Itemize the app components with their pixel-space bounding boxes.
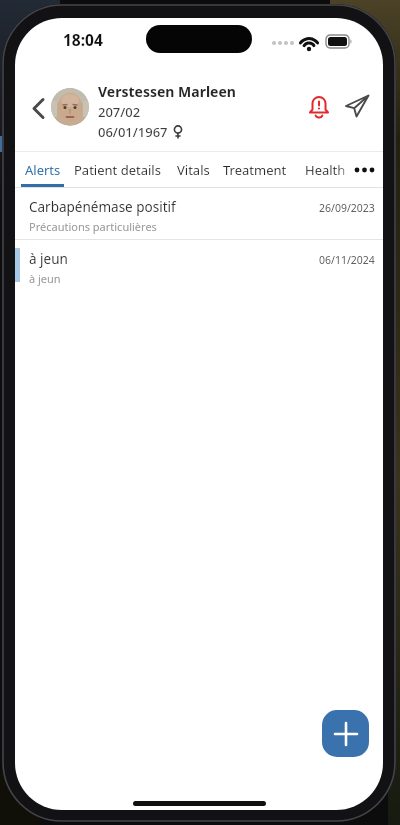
button[interactable]: Carbapénémase positif bbox=[15, 188, 383, 239]
staticText: Précautions particulières bbox=[29, 219, 157, 234]
button[interactable]: Patient details bbox=[70, 152, 164, 188]
staticText: Treatment bbox=[223, 161, 287, 179]
staticText: à jeun bbox=[29, 250, 68, 268]
button[interactable]: Health bbox=[300, 152, 350, 188]
button[interactable] bbox=[347, 152, 383, 187]
staticText: Alerts bbox=[25, 161, 61, 179]
staticText: 06/01/1967 bbox=[98, 123, 168, 141]
button[interactable]: Alerts bbox=[21, 152, 64, 188]
staticText: Health bbox=[305, 161, 346, 179]
staticText: à jeun bbox=[29, 271, 61, 286]
staticText: 18:04 bbox=[63, 29, 103, 50]
button[interactable]: Verstessen Marleen bbox=[98, 82, 236, 141]
staticText: 06/11/2024 bbox=[319, 253, 375, 267]
staticText: Vitals bbox=[177, 161, 210, 179]
staticText: Patient details bbox=[74, 161, 161, 179]
button[interactable]: à jeun bbox=[15, 240, 383, 291]
staticText: 26/09/2023 bbox=[319, 201, 375, 215]
staticText: Carbapénémase positif bbox=[29, 198, 176, 216]
button[interactable]: Treatment bbox=[221, 152, 289, 188]
button[interactable]: 18:04 bbox=[63, 29, 103, 50]
button[interactable] bbox=[322, 710, 369, 757]
button[interactable] bbox=[306, 94, 332, 120]
button[interactable] bbox=[343, 92, 371, 120]
button[interactable] bbox=[25, 95, 53, 123]
button[interactable]: Vitals bbox=[172, 152, 214, 188]
staticText: 207/02 bbox=[98, 103, 141, 121]
staticText: Verstessen Marleen bbox=[98, 82, 236, 101]
button[interactable] bbox=[51, 88, 89, 126]
